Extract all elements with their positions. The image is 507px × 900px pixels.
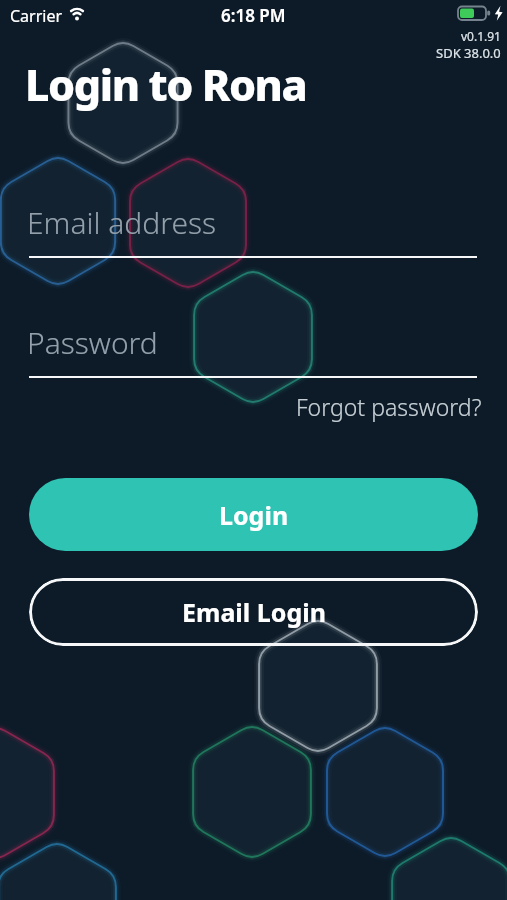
button[interactable]: Forgot password? xyxy=(296,391,482,422)
button[interactable]: Login xyxy=(29,478,478,551)
staticText: Login xyxy=(219,498,289,532)
staticText: Email Login xyxy=(182,595,326,629)
staticText: 6:18 PM xyxy=(221,4,286,27)
button[interactable]: Password xyxy=(29,320,477,380)
staticText: Carrier xyxy=(10,5,63,27)
staticText: Email address xyxy=(27,202,217,243)
button[interactable]: Email Login xyxy=(29,578,478,646)
staticText: Password xyxy=(27,322,158,363)
staticText: v0.1.91 xyxy=(461,28,501,44)
button[interactable]: Email address xyxy=(29,200,477,260)
staticText: Login to Rona xyxy=(25,55,307,114)
staticText: SDK 38.0.0 xyxy=(436,44,501,62)
